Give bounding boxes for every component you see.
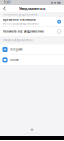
button[interactable]: Временно отключить <box>0 17 64 26</box>
button[interactable]: Почта <box>0 55 64 65</box>
staticText: ▪ ▪ ▪▮ <box>51 1 60 4</box>
staticText: Временно отключить <box>3 18 36 21</box>
staticText: Почта <box>10 58 18 62</box>
staticText: Telegram <box>10 48 22 51</box>
staticText: 9:41 <box>4 1 11 4</box>
button[interactable]: Получать все уведомления <box>0 27 64 36</box>
staticText: Не получать уведомления <box>3 22 39 25</box>
button[interactable]: Back <box>1 5 8 12</box>
staticText: Каналы уведомлений <box>3 38 33 42</box>
staticText: Получать все уведомления <box>3 30 44 33</box>
button[interactable]: Telegram <box>0 44 64 54</box>
staticText: Уведомления <box>19 6 45 11</box>
staticText: Получение уведомлений <box>3 13 38 16</box>
